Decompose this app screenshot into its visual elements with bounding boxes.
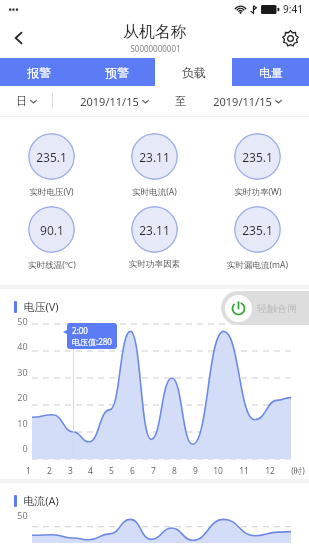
staticText: 实时功率(W) bbox=[234, 186, 282, 198]
button[interactable]: 报警 bbox=[0, 58, 78, 86]
staticText: 电压(V) bbox=[23, 299, 59, 314]
staticText: 2019/11/15 bbox=[213, 94, 272, 109]
staticText: 9 bbox=[193, 465, 198, 477]
staticText: 实时线温(℃) bbox=[28, 259, 76, 271]
staticText: 6 bbox=[130, 465, 135, 477]
staticText: 从机名称 bbox=[123, 22, 187, 42]
staticText: 至 bbox=[175, 94, 186, 108]
staticText: 2019/11/15 bbox=[80, 94, 139, 109]
staticText: 30 bbox=[17, 366, 28, 378]
staticText: ••• bbox=[8, 3, 19, 15]
button[interactable]: Settings bbox=[271, 19, 309, 57]
staticText: 5 bbox=[109, 465, 114, 477]
staticText: 0 bbox=[22, 442, 28, 454]
staticText: 235.1 bbox=[242, 222, 273, 238]
staticText: 日 bbox=[16, 94, 27, 108]
button[interactable]: 2019/11/15 bbox=[186, 94, 309, 109]
staticText: 实时电流(A) bbox=[132, 186, 177, 198]
button[interactable]: 轻触合闸 bbox=[221, 291, 309, 325]
staticText: 轻触合闸 bbox=[257, 302, 297, 315]
staticText: 10 bbox=[17, 417, 28, 429]
button[interactable]: 预警 bbox=[78, 58, 155, 86]
staticText: 电压值:280 bbox=[72, 336, 112, 347]
staticText: 8 bbox=[172, 465, 177, 477]
staticText: 9:41 bbox=[283, 2, 303, 16]
button[interactable]: 235.1 bbox=[206, 206, 309, 271]
button[interactable]: 2019/11/15 bbox=[53, 94, 175, 109]
staticText: 负载 bbox=[182, 65, 206, 80]
staticText: 报警 bbox=[27, 65, 51, 80]
staticText: 电流(A) bbox=[23, 493, 59, 508]
staticText: 235.1 bbox=[36, 149, 67, 165]
staticText: 50 bbox=[17, 509, 28, 521]
staticText: 2:00 bbox=[72, 325, 88, 336]
staticText: 实时功率因素 bbox=[129, 259, 180, 270]
staticText: (时) bbox=[291, 465, 305, 477]
button[interactable]: 日 bbox=[0, 94, 52, 108]
staticText: 4 bbox=[88, 465, 93, 477]
staticText: 20 bbox=[17, 391, 28, 403]
staticText: 12 bbox=[265, 465, 275, 477]
button[interactable]: 235.1 bbox=[206, 133, 309, 198]
staticText: 11 bbox=[239, 465, 249, 477]
staticText: 40 bbox=[17, 340, 28, 352]
button[interactable]: 电量 bbox=[232, 58, 309, 86]
staticText: 10 bbox=[213, 465, 223, 477]
button[interactable]: 23.11 bbox=[103, 206, 206, 270]
staticText: 235.1 bbox=[242, 149, 273, 165]
staticText: 23.11 bbox=[139, 149, 170, 165]
staticText: 实时电压(V) bbox=[29, 186, 74, 198]
staticText: 3 bbox=[68, 465, 73, 477]
staticText: S0000000001 bbox=[130, 43, 181, 54]
staticText: 电量 bbox=[259, 65, 283, 80]
button[interactable]: 23.11 bbox=[103, 133, 206, 198]
staticText: 7 bbox=[151, 465, 156, 477]
staticText: 2 bbox=[47, 465, 52, 477]
staticText: 1 bbox=[26, 465, 31, 477]
button[interactable]: Back bbox=[0, 19, 38, 57]
staticText: 实时漏电流(mA) bbox=[227, 259, 288, 271]
button[interactable]: 235.1 bbox=[0, 133, 103, 198]
staticText: 预警 bbox=[105, 65, 129, 80]
staticText: 50 bbox=[17, 315, 28, 327]
staticText: 23.11 bbox=[139, 222, 170, 238]
button[interactable]: 90.1 bbox=[0, 206, 103, 271]
button[interactable]: 负载 bbox=[155, 58, 232, 86]
staticText: 90.1 bbox=[40, 222, 64, 238]
